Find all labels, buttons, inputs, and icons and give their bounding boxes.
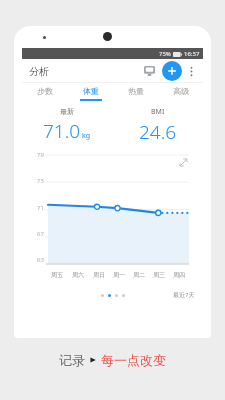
staticText: 周四 bbox=[173, 271, 185, 279]
staticText: 每一点改变 bbox=[101, 352, 166, 368]
staticText: 63 bbox=[37, 256, 44, 264]
staticText: 热量 bbox=[128, 86, 144, 96]
staticText: 16:57 bbox=[184, 50, 200, 58]
staticText: kg bbox=[82, 131, 91, 141]
button[interactable]: Add bbox=[162, 61, 182, 81]
staticText: 周日 bbox=[93, 271, 105, 279]
staticText: 71 bbox=[37, 204, 44, 212]
button[interactable]: 热量 bbox=[113, 83, 158, 103]
staticText: 最近7天 bbox=[173, 291, 195, 299]
staticText: 步数 bbox=[37, 86, 53, 96]
staticText: 79 bbox=[37, 151, 44, 159]
button[interactable]: 高级 bbox=[158, 83, 203, 103]
staticText: 分析 bbox=[29, 65, 49, 78]
staticText: 周一 bbox=[113, 271, 125, 279]
button[interactable]: 体重 bbox=[68, 83, 113, 103]
staticText: 周六 bbox=[72, 271, 84, 279]
staticText: 周五 bbox=[51, 271, 63, 279]
staticText: 24.6 bbox=[139, 119, 177, 143]
staticText: 75% bbox=[159, 50, 171, 58]
staticText: 体重 bbox=[83, 86, 99, 96]
staticText: 75 bbox=[37, 177, 44, 185]
staticText: 最新 bbox=[60, 107, 74, 116]
staticText: 记录 bbox=[59, 352, 85, 368]
button[interactable]: More options bbox=[183, 63, 199, 79]
button[interactable]: 步数 bbox=[22, 83, 68, 103]
staticText: BMI bbox=[151, 107, 165, 117]
staticText: 67 bbox=[37, 230, 44, 238]
staticText: 71.0 bbox=[43, 118, 81, 143]
staticText: 周二 bbox=[133, 271, 145, 279]
staticText: 高级 bbox=[173, 86, 189, 96]
staticText: 周三 bbox=[153, 271, 165, 279]
button[interactable]: Messages bbox=[139, 61, 159, 81]
